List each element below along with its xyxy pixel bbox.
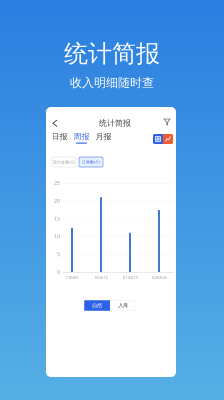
- button[interactable]: Chart view: [163, 134, 173, 144]
- button[interactable]: Table view: [153, 134, 163, 144]
- staticText: 订单数(个): [82, 159, 100, 165]
- staticText: 月报: [95, 132, 111, 141]
- staticText: 8.20-8.26: [151, 275, 166, 280]
- button[interactable]: 实付金额(元): [52, 157, 76, 167]
- staticText: 10: [54, 233, 60, 240]
- button[interactable]: 入库: [110, 300, 136, 311]
- staticText: 8.6-8.12: [94, 275, 107, 280]
- staticText: 8.13-8.19: [122, 275, 137, 280]
- button[interactable]: 周报: [73, 132, 90, 144]
- button[interactable]: 自然: [84, 300, 110, 311]
- staticText: 0: [57, 268, 60, 276]
- staticText: 统计简报: [99, 118, 131, 128]
- staticText: 入库: [118, 302, 128, 309]
- staticText: 20: [54, 197, 60, 204]
- button[interactable]: 日报: [51, 132, 68, 144]
- staticText: 周报: [73, 132, 89, 141]
- staticText: 统计简报: [64, 39, 160, 68]
- button[interactable]: Filter: [161, 116, 173, 128]
- button[interactable]: Back: [49, 116, 61, 130]
- staticText: 实付金额(元): [53, 159, 75, 165]
- button[interactable]: 订单数(个): [79, 157, 103, 167]
- staticText: 收入明细随时查: [70, 75, 154, 90]
- staticText: 自然: [92, 302, 102, 309]
- staticText: 7.30-8.5: [65, 275, 78, 280]
- staticText: 25: [54, 179, 60, 187]
- button[interactable]: 月报: [95, 132, 112, 144]
- staticText: 日报: [51, 132, 67, 141]
- staticText: 15: [54, 215, 60, 222]
- staticText: 5: [57, 251, 60, 258]
